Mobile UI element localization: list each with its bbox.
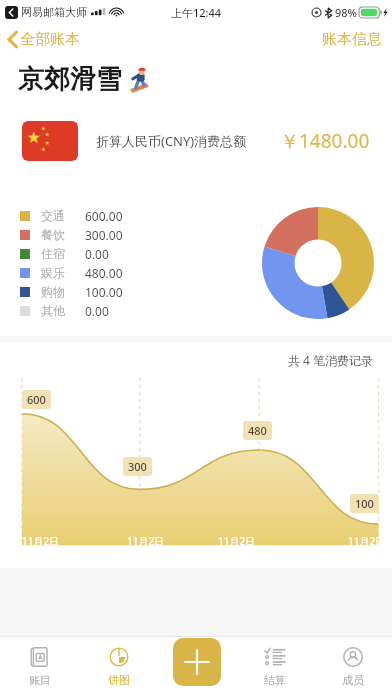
staticText: 京郊滑雪 (18, 63, 122, 96)
staticText: 11月2日 (127, 534, 165, 548)
staticText: 餐饮 (41, 227, 65, 242)
staticText: 全部账本 (20, 30, 80, 49)
staticText: 共 4 笔消费记录 (288, 352, 374, 368)
staticText: 480.00 (85, 265, 123, 281)
button[interactable]: 结算 (236, 636, 314, 696)
staticText: 饼图 (108, 673, 130, 687)
staticText: 住宿 (41, 246, 65, 261)
button[interactable]: 账本信息 (312, 26, 392, 53)
staticText: 上午12:44 (171, 5, 222, 20)
staticText: 折算人民币(CNY)消费总额 (96, 132, 247, 150)
staticText: 300.00 (85, 227, 123, 243)
staticText: 账本信息 (322, 30, 382, 49)
staticText: 0.00 (85, 246, 109, 262)
staticText: 交通 (41, 208, 65, 223)
staticText: 11月2日 (348, 534, 386, 548)
staticText: 100.00 (85, 284, 123, 300)
staticText: 结算 (264, 673, 286, 687)
button[interactable]: 饼图 (79, 636, 158, 696)
staticText: 成员 (342, 673, 364, 687)
staticText: 300 (128, 459, 147, 474)
button[interactable]: 成员 (314, 636, 392, 696)
staticText: 0.00 (85, 303, 109, 319)
staticText: 网易邮箱大师 (21, 5, 87, 19)
button[interactable]: 账目 (0, 636, 79, 696)
staticText: 购物 (41, 284, 65, 299)
button[interactable]: 全部账本 (0, 26, 90, 53)
staticText: 100 (355, 496, 374, 511)
staticText: 480 (248, 423, 267, 438)
staticText: 11月2日 (218, 534, 256, 548)
staticText: ￥1480.00 (280, 128, 370, 154)
staticText: 其他 (41, 303, 65, 318)
staticText: 98% (335, 5, 357, 20)
staticText: 账目 (29, 673, 51, 687)
staticText: 娱乐 (41, 265, 65, 280)
button[interactable]: Add expense (173, 638, 221, 686)
staticText: 600 (27, 392, 46, 407)
staticText: 11月2日 (22, 534, 60, 548)
staticText: 600.00 (85, 208, 123, 224)
